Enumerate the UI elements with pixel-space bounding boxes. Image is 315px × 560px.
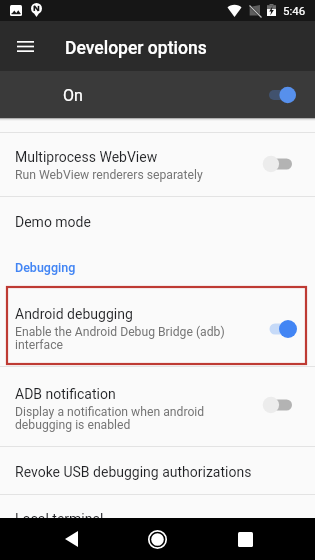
button[interactable]: Home xyxy=(132,518,182,560)
button[interactable]: On xyxy=(0,71,315,118)
button[interactable]: Back xyxy=(46,518,96,560)
staticText: Enable the Android Debug Bridge (adb) in… xyxy=(15,325,240,352)
button[interactable]: ADB notification xyxy=(0,367,315,446)
staticText: Debugging xyxy=(15,260,76,275)
button[interactable]: Local terminal xyxy=(0,495,315,542)
button[interactable]: Revoke USB debugging authorizations xyxy=(0,447,315,494)
staticText: Developer options xyxy=(65,38,207,59)
staticText: Android debugging xyxy=(15,306,133,322)
staticText: Local terminal xyxy=(15,511,104,527)
button[interactable]: Demo mode xyxy=(0,197,315,246)
staticText: Display a notification when android debu… xyxy=(15,405,220,432)
staticText: 5:46 xyxy=(283,4,306,17)
button[interactable]: Open navigation drawer xyxy=(1,22,49,70)
button[interactable]: Recent apps xyxy=(220,518,270,560)
staticText: On xyxy=(63,86,83,105)
button[interactable]: Android debugging xyxy=(0,287,315,365)
staticText: Multiprocess WebView xyxy=(15,149,158,165)
staticText: Demo mode xyxy=(15,214,91,230)
button[interactable]: Multiprocess WebView xyxy=(0,133,315,196)
staticText: Revoke USB debugging authorizations xyxy=(15,464,252,480)
staticText: Run WebView renderers separately xyxy=(15,168,203,182)
staticText: ADB notification xyxy=(15,386,116,402)
